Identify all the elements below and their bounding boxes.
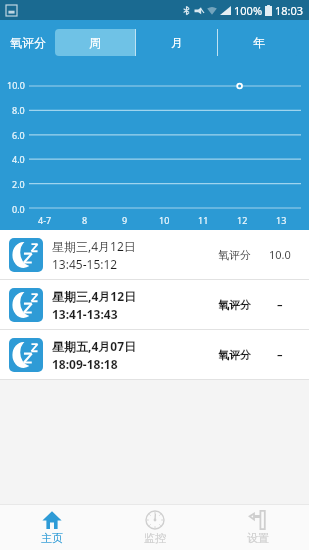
staticText: 13:45-15:12	[52, 256, 118, 272]
staticText: 8.0	[12, 104, 25, 116]
staticText: 18:03	[275, 3, 304, 18]
staticText: 年	[253, 35, 265, 50]
button[interactable]: 监控	[103, 504, 206, 550]
button[interactable]: 月	[136, 29, 217, 56]
button[interactable]: 星期三,4月12日	[0, 230, 309, 279]
staticText: 13	[276, 214, 287, 226]
button[interactable]: 周	[55, 29, 135, 56]
staticText: 星期五,4月07日	[52, 338, 137, 354]
staticText: 周	[89, 35, 101, 50]
staticText: 10	[159, 214, 170, 226]
staticText: 监控	[144, 531, 166, 545]
staticText: 9	[122, 214, 128, 226]
staticText: 6.0	[12, 129, 25, 141]
staticText: 月	[171, 35, 183, 50]
staticText: 18:09-18:18	[52, 356, 118, 372]
staticText: 11	[198, 214, 209, 226]
staticText: 4.0	[12, 153, 25, 165]
staticText: 13:41-13:43	[52, 306, 118, 322]
button[interactable]: 主页	[0, 504, 103, 550]
staticText: 10.0	[269, 247, 291, 262]
staticText: 氧评分	[10, 35, 46, 50]
staticText: –	[277, 297, 283, 312]
staticText: 10.0	[7, 79, 25, 91]
staticText: 100%	[234, 3, 263, 18]
staticText: 氧评分	[218, 298, 251, 312]
staticText: 星期三,4月12日	[52, 288, 137, 304]
button[interactable]: 星期五,4月07日	[0, 330, 309, 379]
staticText: 0.0	[12, 203, 25, 215]
button[interactable]: 设置	[206, 504, 309, 550]
staticText: 设置	[247, 531, 269, 545]
button[interactable]: 星期三,4月12日	[0, 280, 309, 329]
staticText: 2.0	[12, 178, 25, 190]
staticText: –	[277, 347, 283, 362]
staticText: 4-7	[38, 214, 52, 226]
staticText: 12	[237, 214, 248, 226]
staticText: 星期三,4月12日	[52, 238, 136, 254]
staticText: 主页	[41, 531, 63, 545]
button[interactable]: 年	[218, 29, 299, 56]
staticText: 氧评分	[218, 248, 251, 262]
staticText: 氧评分	[218, 348, 251, 362]
staticText: 8	[82, 214, 88, 226]
